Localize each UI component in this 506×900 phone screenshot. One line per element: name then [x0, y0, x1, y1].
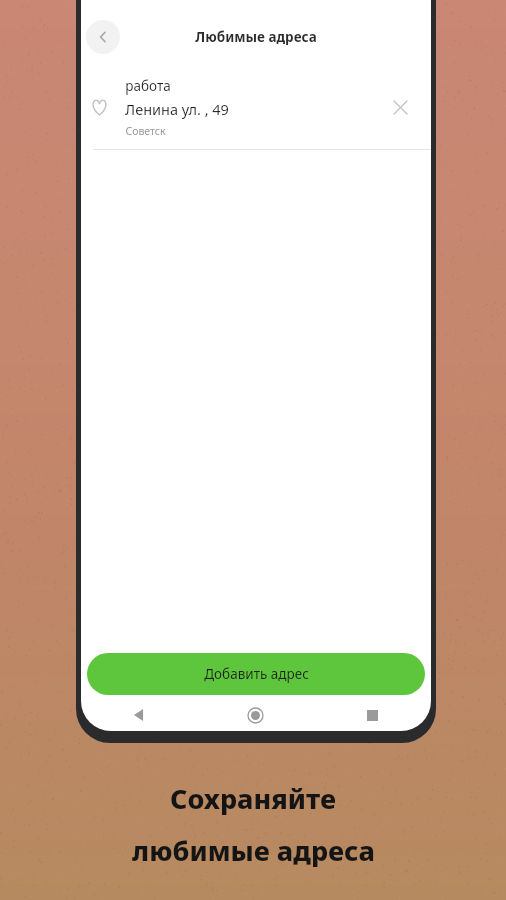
button[interactable]: Избранное [81, 67, 431, 149]
button[interactable]: Домой [197, 702, 314, 728]
button[interactable]: Назад [86, 20, 120, 54]
staticText: любимые адреса [132, 832, 375, 869]
staticText: работа [125, 77, 171, 95]
staticText: Сохраняйте [170, 780, 336, 817]
staticText: Ленина ул. , 49 [125, 99, 229, 119]
button[interactable]: Недавние [314, 702, 431, 728]
button[interactable]: Удалить адрес [388, 95, 412, 119]
button[interactable]: Добавить адрес [87, 653, 425, 695]
staticText: Добавить адрес [204, 665, 309, 683]
staticText: Любимые адреса [195, 28, 317, 46]
button[interactable]: Избранное [87, 95, 111, 119]
button[interactable]: Назад [81, 702, 197, 728]
staticText: Советск [125, 124, 166, 138]
